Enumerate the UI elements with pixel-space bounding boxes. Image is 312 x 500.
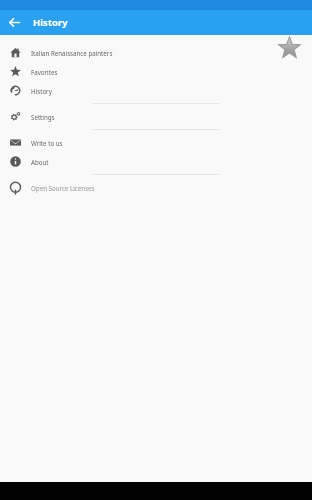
button[interactable]: Open Source Licenses <box>0 178 312 197</box>
staticText: Favorites <box>31 68 58 76</box>
button[interactable]: About <box>0 152 312 171</box>
button[interactable]: Settings <box>0 107 312 126</box>
staticText: Settings <box>31 113 55 121</box>
staticText: History <box>33 16 68 29</box>
staticText: Italian Renaissance painters <box>31 49 113 57</box>
button[interactable]: Favorite <box>278 36 301 59</box>
staticText: Open Source Licenses <box>31 184 95 192</box>
staticText: History <box>31 87 52 95</box>
button[interactable]: History <box>0 81 312 100</box>
staticText: About <box>31 158 49 166</box>
button[interactable]: Back <box>5 13 24 32</box>
staticText: Write to us <box>31 139 63 147</box>
button[interactable]: Write to us <box>0 133 312 152</box>
button[interactable]: Italian Renaissance painters <box>0 43 312 62</box>
button[interactable]: Favorites <box>0 62 312 81</box>
